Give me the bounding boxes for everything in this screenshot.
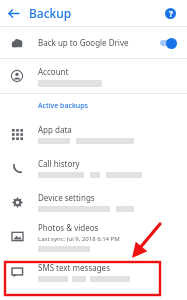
staticText: Backup	[29, 5, 72, 21]
button[interactable]: SMS text messages	[0, 254, 187, 290]
staticText: Active backups	[38, 101, 88, 111]
staticText: Account	[38, 66, 69, 77]
staticText: ?	[169, 8, 173, 19]
staticText: Photos & videos	[38, 222, 99, 233]
button[interactable]: Back up to Google Drive	[0, 27, 187, 58]
button[interactable]: Call history	[0, 151, 187, 185]
button[interactable]: Device settings	[0, 185, 187, 219]
staticText: App data	[38, 124, 72, 135]
staticText: SMS text messages	[38, 262, 110, 273]
button[interactable]: App data	[0, 117, 187, 151]
button[interactable]: Account	[0, 59, 187, 93]
staticText: Back up to Google Drive	[38, 37, 129, 48]
button[interactable]: Back	[0, 0, 26, 26]
button[interactable]: Photos & videos	[0, 219, 187, 254]
staticText: Call history	[38, 158, 80, 169]
staticText: Last sync: Jul 9, 2018 6:14 PM	[38, 235, 120, 243]
staticText: Device settings	[38, 192, 95, 203]
button[interactable]: Help	[157, 0, 183, 26]
